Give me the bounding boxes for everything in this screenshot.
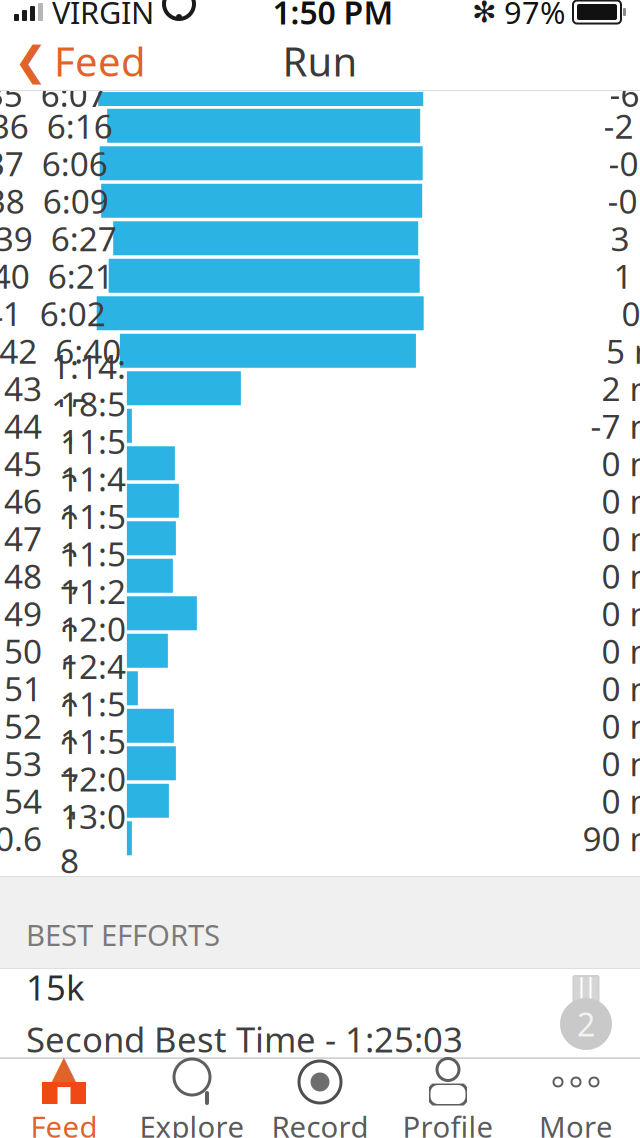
- staticText: 52: [4, 704, 42, 748]
- staticText: ✻: [472, 0, 497, 29]
- button[interactable]: ❮: [0, 32, 160, 90]
- staticText: 0 m: [601, 441, 640, 485]
- staticText: Run: [282, 34, 357, 88]
- staticText: 40: [0, 254, 30, 298]
- staticText: Feed: [30, 1107, 97, 1138]
- staticText: 48: [4, 554, 42, 598]
- button[interactable]: Record: [256, 1059, 384, 1138]
- staticText: More: [539, 1107, 613, 1138]
- staticText: 11:49: [60, 456, 126, 545]
- staticText: -0 m: [607, 179, 640, 223]
- staticText: 6:16: [47, 104, 113, 148]
- button[interactable]: 15k: [0, 969, 640, 1057]
- staticText: 44: [4, 404, 42, 448]
- staticText: 1 m: [613, 254, 640, 298]
- staticText: 11:57: [60, 719, 126, 807]
- staticText: 90 m: [582, 816, 640, 860]
- staticText: Second Best Time - 1:25:03: [26, 1016, 463, 1062]
- staticText: 50: [4, 629, 42, 673]
- staticText: 0.6: [0, 816, 42, 860]
- staticText: 49: [4, 591, 42, 635]
- staticText: 54: [4, 779, 42, 823]
- staticText: 13:08: [60, 794, 126, 882]
- staticText: 11:52: [60, 494, 126, 582]
- staticText: 6:06: [42, 141, 108, 185]
- staticText: 37: [0, 141, 24, 185]
- button[interactable]: ▲: [0, 1059, 128, 1138]
- staticText: 12:04: [60, 756, 126, 845]
- staticText: Profile: [402, 1107, 493, 1138]
- staticText: 0 m: [601, 554, 640, 598]
- staticText: 0 m: [601, 741, 640, 785]
- staticText: 0 m: [601, 704, 640, 748]
- staticText: -2 m: [603, 104, 640, 148]
- staticText: -6 m: [609, 72, 640, 116]
- staticText: VIRGIN: [52, 0, 154, 32]
- staticText: 0 m: [621, 291, 640, 335]
- staticText: 3 m: [610, 216, 640, 260]
- staticText: 11:57: [60, 531, 126, 620]
- staticText: 97%: [504, 0, 565, 32]
- button[interactable]: Explore: [128, 1059, 256, 1138]
- button[interactable]: Profile: [384, 1059, 512, 1138]
- staticText: 0 m: [601, 779, 640, 823]
- staticText: 6:07: [41, 72, 107, 116]
- staticText: 53: [4, 741, 42, 785]
- staticText: Feed: [54, 34, 146, 88]
- staticText: 5 m: [606, 329, 640, 373]
- staticText: 0 m: [601, 629, 640, 673]
- staticText: 0 m: [601, 591, 640, 635]
- staticText: 6:40: [55, 329, 121, 373]
- staticText: BEST EFFORTS: [26, 915, 220, 954]
- staticText: 6:02: [40, 291, 106, 335]
- staticText: 41: [0, 291, 22, 335]
- staticText: 6:21: [48, 254, 114, 298]
- staticText: 35: [0, 72, 23, 116]
- staticText: 0 m: [601, 666, 640, 710]
- staticText: 12:05: [60, 606, 126, 695]
- staticText: 36: [0, 104, 29, 148]
- staticText: 43: [4, 366, 42, 410]
- staticText: 39: [0, 216, 33, 260]
- staticText: 0 m: [601, 516, 640, 560]
- staticText: 11:28: [60, 569, 126, 657]
- staticText: 47: [4, 516, 42, 560]
- staticText: 6:09: [43, 179, 109, 223]
- staticText: 2: [577, 1003, 595, 1045]
- staticText: 42: [0, 329, 37, 373]
- staticText: -7 m: [590, 404, 640, 448]
- staticText: 1:50 PM: [272, 0, 393, 33]
- staticText: Record: [271, 1107, 368, 1138]
- staticText: 2 m: [601, 366, 640, 410]
- staticText: 1:14:15: [51, 344, 126, 432]
- staticText: 18:51: [60, 381, 126, 470]
- staticText: ❮: [14, 38, 48, 84]
- staticText: 15k: [26, 964, 85, 1010]
- staticText: 11:52: [60, 419, 126, 507]
- staticText: 46: [4, 479, 42, 523]
- staticText: ▲: [46, 1045, 81, 1097]
- staticText: 51: [4, 666, 42, 710]
- staticText: Explore: [139, 1107, 244, 1138]
- staticText: 12:40: [60, 644, 126, 732]
- staticText: 11:59: [60, 681, 126, 770]
- staticText: 45: [4, 441, 42, 485]
- staticText: 38: [0, 179, 25, 223]
- staticText: 6:27: [51, 216, 117, 260]
- staticText: -0 m: [608, 141, 640, 185]
- button[interactable]: More: [512, 1059, 640, 1138]
- staticText: 0 m: [601, 479, 640, 523]
